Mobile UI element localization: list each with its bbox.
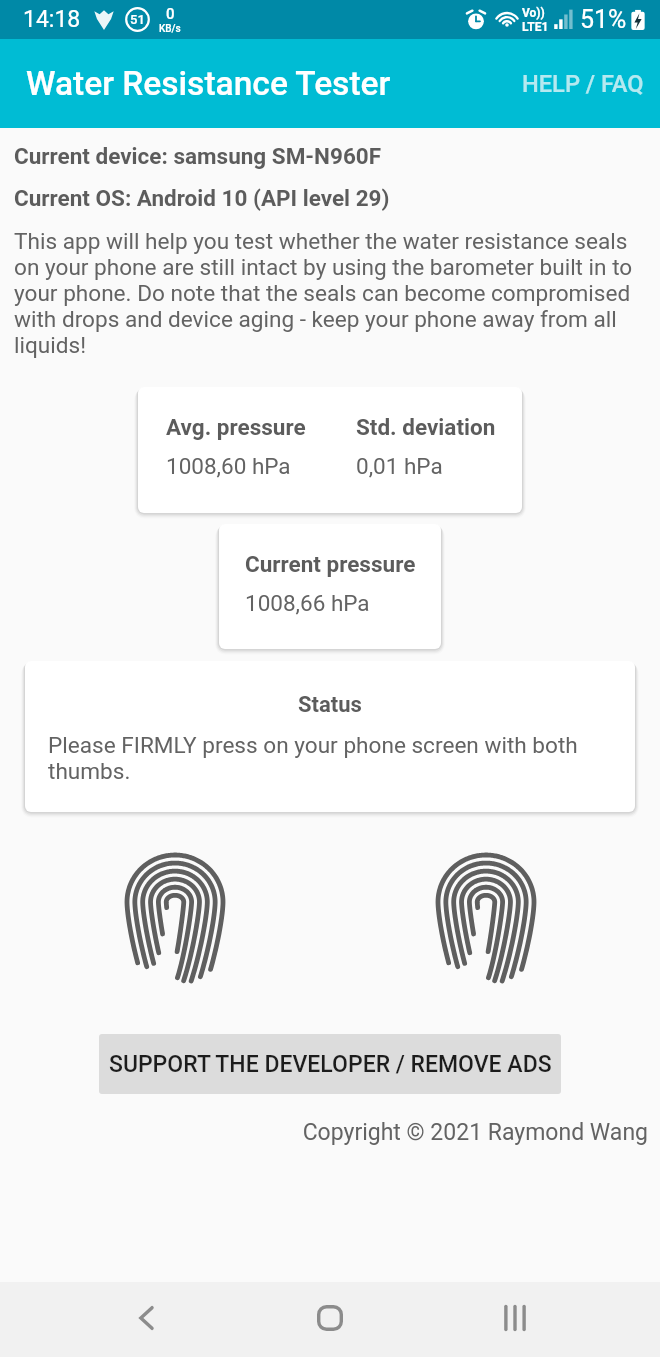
staticText: SUPPORT THE DEVELOPER / REMOVE ADS	[109, 1051, 552, 1078]
staticText: Water Resistance Tester	[26, 64, 391, 103]
staticText: KB/s	[159, 23, 181, 35]
staticText: Copyright © 2021 Raymond Wang	[0, 1119, 648, 1146]
staticText: Please FIRMLY press on your phone screen…	[48, 732, 609, 784]
staticText: Current OS: Android 10 (API level 29)	[14, 185, 390, 211]
staticText: This app will help you test whether the …	[14, 228, 646, 358]
staticText: 1008,66 hPa	[245, 590, 370, 616]
button[interactable]: Home	[307, 1282, 353, 1353]
staticText: 1008,60 hPa	[166, 453, 291, 479]
staticText: Current device: samsung SM-N960F	[14, 143, 382, 169]
button[interactable]: Recent apps	[492, 1282, 538, 1353]
button[interactable]: HELP / FAQ	[508, 50, 660, 118]
staticText: HELP / FAQ	[522, 70, 644, 98]
staticText: Vo))	[522, 6, 545, 20]
staticText: 14:18	[23, 6, 81, 33]
staticText: Avg. pressure	[166, 414, 306, 440]
staticText: LTE1	[522, 20, 549, 34]
staticText: 0	[166, 5, 175, 23]
staticText: Status	[25, 692, 635, 718]
staticText: Current pressure	[245, 551, 416, 577]
staticText: 0,01 hPa	[356, 453, 443, 479]
button[interactable]: SUPPORT THE DEVELOPER / REMOVE ADS	[99, 1034, 561, 1094]
staticText: Std. deviation	[356, 414, 496, 440]
staticText: 51	[130, 12, 145, 27]
button[interactable]: Back	[124, 1282, 170, 1353]
staticText: 51%	[580, 5, 627, 34]
